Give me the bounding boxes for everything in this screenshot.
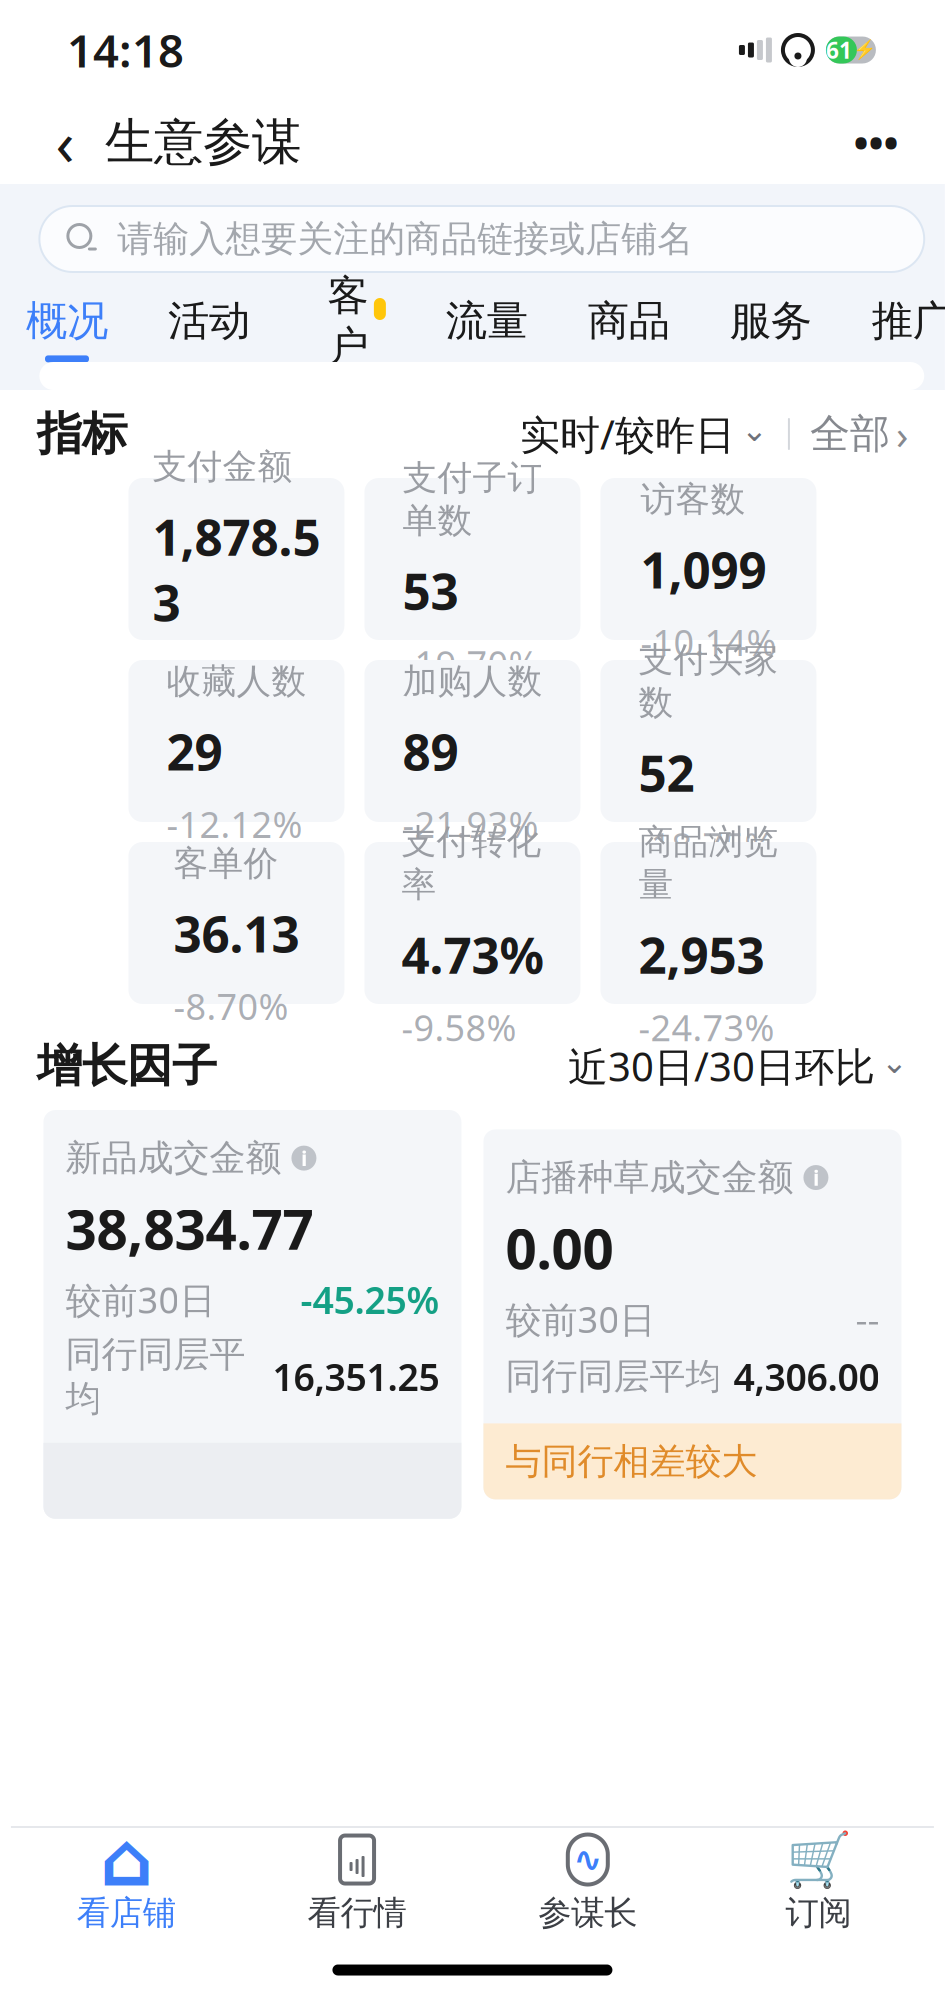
staticText: 支付金额 (152, 445, 292, 488)
button[interactable]: 商品浏览量 (600, 842, 816, 1004)
staticText: 商品 (588, 296, 670, 346)
staticText: 16,351.25 (272, 1352, 439, 1401)
staticText: 近30日/30日环比 (568, 1039, 875, 1092)
button[interactable]: 加购人数 (364, 660, 580, 822)
staticText: ‹ (55, 101, 74, 183)
staticText: -8.70% (173, 982, 288, 1030)
staticText: 38,834.77 (65, 1192, 313, 1265)
staticText: 1,099 (640, 537, 766, 602)
staticText: 53 (402, 558, 458, 623)
staticText: -19.70% (402, 639, 538, 687)
staticText: 2,953 (638, 922, 764, 987)
staticText: 收藏人数 (166, 660, 306, 703)
button[interactable]: 支付转化率 (364, 842, 580, 1004)
staticText: ⚡ (853, 39, 876, 61)
staticText: 36.13 (173, 901, 299, 966)
button[interactable]: ⌂ (11, 1828, 242, 1940)
button[interactable]: 近30日/30日环比 (568, 1039, 908, 1092)
staticText: -10.14% (640, 618, 776, 666)
staticText: 89 (402, 719, 458, 784)
button[interactable]: 新品成交金额 (43, 1110, 461, 1519)
button[interactable]: 店播种草成交金额 (483, 1129, 901, 1499)
staticText: 客单价 (173, 842, 278, 885)
staticText: 实时/较昨日 (520, 407, 735, 460)
button[interactable]: ∿ (472, 1828, 703, 1940)
button[interactable]: 活动 (168, 296, 250, 362)
staticText: 29 (166, 719, 222, 784)
staticText: 指标 (37, 406, 127, 462)
staticText: 概况 (26, 296, 108, 346)
staticText: 推广 (872, 296, 945, 346)
staticText: 61 (826, 35, 852, 65)
staticText: 4,306.00 (733, 1352, 879, 1401)
button[interactable]: 实时/较昨日 (520, 407, 768, 460)
button[interactable]: 客单价 (128, 842, 344, 1004)
button[interactable]: 访客数 (600, 478, 816, 640)
staticText: 14:18 (67, 20, 184, 80)
staticText: 活动 (168, 296, 250, 346)
staticText: 加购人数 (402, 660, 542, 703)
staticText: › (896, 407, 908, 460)
staticText: -9.58% (401, 1003, 516, 1051)
staticText: 商品浏览量 (638, 821, 778, 906)
button[interactable]: 🛒 (703, 1828, 934, 1940)
staticText: i (813, 1163, 819, 1192)
staticText: 增长因子 (37, 1038, 217, 1094)
staticText: 服务 (730, 296, 812, 346)
staticText: 订阅 (786, 1892, 852, 1933)
staticText: -25.82% (152, 651, 288, 699)
button[interactable]: 全部 (810, 407, 908, 460)
staticText: 🛒 (786, 1829, 852, 1890)
staticText: -18.75% (638, 821, 774, 869)
staticText: 4.73% (401, 922, 543, 987)
staticText: 支付转化率 (401, 821, 541, 906)
button[interactable]: 推广 (872, 296, 945, 362)
staticText: -24.73% (638, 1003, 774, 1051)
staticText: ••• (853, 115, 898, 168)
staticText: 支付买家数 (638, 639, 778, 724)
staticText: -21.93% (402, 800, 538, 848)
staticText: 访客数 (640, 478, 745, 521)
staticText: 0.00 (505, 1212, 613, 1284)
button[interactable]: 支付子订单数 (364, 478, 580, 640)
staticText: i (301, 1144, 307, 1172)
staticText: 与同行相差较大 (505, 1439, 757, 1483)
staticText: -- (855, 1294, 879, 1344)
button[interactable]: 流量 (446, 296, 528, 362)
staticText: 同行同层平均 (65, 1332, 245, 1421)
staticText: 客户 (327, 270, 368, 372)
staticText: 看行情 (308, 1892, 407, 1933)
staticText: 较前30日 (505, 1295, 655, 1343)
staticText: 请输入想要关注的商品链接或店铺名 (117, 217, 693, 261)
button[interactable]: 客户 (310, 296, 386, 362)
button[interactable]: 概况 (26, 296, 108, 362)
staticText: 新品成交金额 (65, 1136, 281, 1180)
staticText: ⌂ (100, 1817, 153, 1902)
button[interactable]: 请输入想要关注的商品链接或店铺名 (39, 206, 924, 272)
staticText: ∿ (573, 1840, 602, 1879)
button[interactable]: 服务 (730, 296, 812, 362)
staticText: -45.25% (300, 1275, 439, 1324)
staticText: 1,878.53 (152, 504, 320, 635)
staticText: -12.12% (166, 800, 302, 848)
button[interactable]: 支付金额 (128, 478, 344, 640)
staticText: 看店铺 (77, 1892, 176, 1933)
staticText: 支付子订单数 (402, 457, 542, 542)
button[interactable]: Back (37, 111, 93, 173)
staticText: 流量 (446, 296, 528, 346)
staticText: 参谋长 (538, 1892, 637, 1933)
staticText: ⌄ (741, 412, 768, 448)
staticText: 全部 (810, 409, 890, 458)
staticText: 52 (638, 740, 694, 805)
button[interactable]: More (844, 111, 908, 173)
staticText: 生意参谋 (105, 112, 301, 172)
button[interactable]: 商品 (588, 296, 670, 362)
staticText: 较前30日 (65, 1276, 215, 1323)
button[interactable]: 支付买家数 (600, 660, 816, 822)
button[interactable]: 收藏人数 (128, 660, 344, 822)
button[interactable]: 看行情 (242, 1828, 472, 1940)
staticText: 同行同层平均 (505, 1354, 721, 1399)
staticText: 店播种草成交金额 (505, 1155, 793, 1200)
staticText: ⌄ (881, 1044, 908, 1080)
